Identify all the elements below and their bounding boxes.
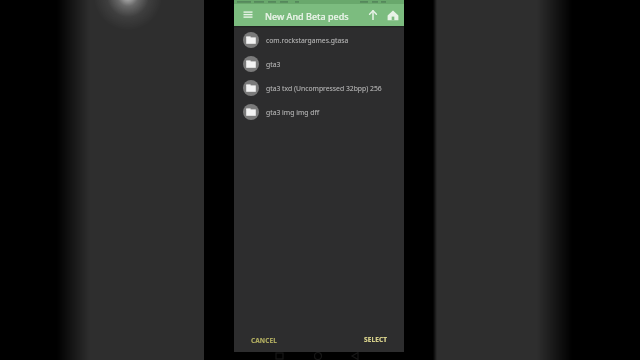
staticText: CANCEL xyxy=(251,336,278,345)
button[interactable]: gta3 img img dff xyxy=(234,100,404,124)
staticText: gta3 img img dff xyxy=(266,108,320,117)
button[interactable] xyxy=(239,7,257,23)
staticText: New And Beta peds xyxy=(265,10,349,22)
button[interactable]: gta3 xyxy=(234,52,404,76)
staticText: com.rockstargames.gtasa xyxy=(266,36,349,45)
button[interactable] xyxy=(385,7,401,23)
button[interactable]: gta3 txd (Uncompressed 32bpp) 256 xyxy=(234,76,404,100)
button[interactable]: CANCEL xyxy=(251,331,293,349)
staticText: SELECT xyxy=(364,335,388,344)
button[interactable]: com.rockstargames.gtasa xyxy=(234,28,404,52)
staticText: gta3 xyxy=(266,60,281,69)
button[interactable] xyxy=(365,7,381,23)
button[interactable]: SELECT xyxy=(364,330,398,348)
staticText: gta3 txd (Uncompressed 32bpp) 256 xyxy=(266,84,382,93)
